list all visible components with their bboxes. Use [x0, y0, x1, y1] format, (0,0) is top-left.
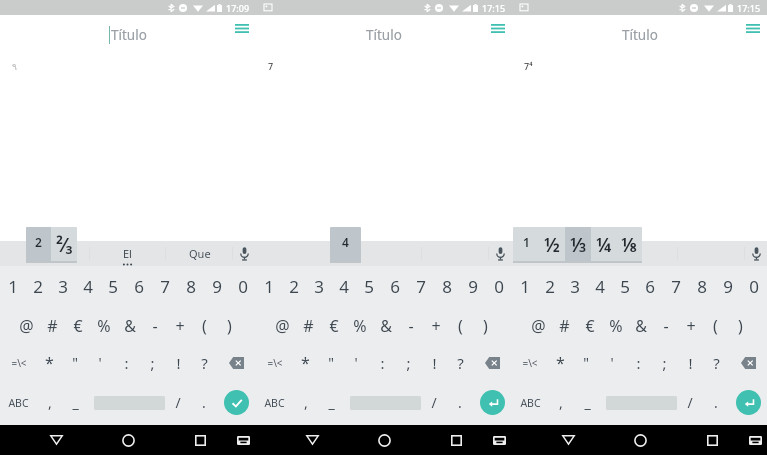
button[interactable]: 7: [152, 266, 178, 307]
button[interactable]: Space: [600, 380, 677, 425]
button[interactable]: ": [318, 345, 343, 380]
button[interactable]: +: [423, 307, 448, 345]
button[interactable]: ABC: [256, 380, 293, 425]
button[interactable]: ;: [139, 345, 165, 380]
button[interactable]: Backspace: [217, 345, 256, 380]
button[interactable]: ABC: [0, 380, 37, 425]
button[interactable]: ": [62, 345, 87, 380]
button[interactable]: /: [421, 380, 447, 425]
button[interactable]: %: [603, 307, 628, 345]
button[interactable]: Space: [344, 380, 421, 425]
button[interactable]: Voice input: [233, 241, 256, 266]
button[interactable]: Voice input: [489, 241, 512, 266]
button[interactable]: €: [65, 307, 91, 345]
button[interactable]: Enter: [729, 380, 767, 425]
button[interactable]: 0: [741, 266, 767, 307]
button[interactable]: Switch keyboard: [740, 425, 767, 455]
button[interactable]: ⅛: [617, 227, 642, 262]
button[interactable]: _: [574, 380, 600, 425]
button[interactable]: Menu: [485, 15, 511, 41]
button[interactable]: Recent apps: [439, 425, 474, 455]
button[interactable]: 5: [612, 266, 637, 307]
button[interactable]: .: [191, 380, 217, 425]
button[interactable]: Recent apps: [183, 425, 218, 455]
button[interactable]: Que: [166, 241, 232, 266]
button[interactable]: Back: [38, 425, 74, 455]
button[interactable]: 9: [204, 266, 230, 307]
button[interactable]: #: [551, 307, 577, 345]
button[interactable]: 8: [689, 266, 715, 307]
button[interactable]: 6: [382, 266, 408, 307]
button[interactable]: 8: [434, 266, 460, 307]
button[interactable]: *: [37, 345, 62, 380]
button[interactable]: El: [90, 241, 165, 266]
button[interactable]: 1: [256, 266, 281, 307]
button[interactable]: Home: [622, 425, 658, 455]
button[interactable]: @: [269, 307, 295, 345]
button[interactable]: -: [142, 307, 167, 345]
button[interactable]: Recent apps: [695, 425, 730, 455]
button[interactable]: 2: [281, 266, 306, 307]
button[interactable]: _: [62, 380, 88, 425]
button[interactable]: [512, 241, 601, 266]
button[interactable]: *: [293, 345, 318, 380]
button[interactable]: =\<: [0, 345, 37, 380]
button[interactable]: 9: [715, 266, 741, 307]
button[interactable]: -: [653, 307, 678, 345]
button[interactable]: [346, 241, 421, 266]
button[interactable]: #: [295, 307, 321, 345]
button[interactable]: 4: [587, 266, 612, 307]
button[interactable]: [256, 241, 345, 266]
button[interactable]: 1: [0, 266, 25, 307]
button[interactable]: 0: [486, 266, 512, 307]
button[interactable]: Voice input: [745, 241, 767, 266]
button[interactable]: €: [321, 307, 347, 345]
button[interactable]: +: [678, 307, 703, 345]
button[interactable]: ,: [548, 380, 574, 425]
button[interactable]: &: [373, 307, 398, 345]
button[interactable]: ;: [395, 345, 421, 380]
button[interactable]: 1: [513, 227, 539, 262]
button[interactable]: :: [113, 345, 139, 380]
button[interactable]: ⅓: [565, 227, 591, 262]
button[interactable]: /: [165, 380, 191, 425]
button[interactable]: 7: [663, 266, 689, 307]
button[interactable]: (: [448, 307, 473, 345]
button[interactable]: =\<: [256, 345, 293, 380]
button[interactable]: Home: [110, 425, 146, 455]
button[interactable]: Space: [88, 380, 165, 425]
button[interactable]: 0: [230, 266, 256, 307]
button[interactable]: &: [628, 307, 653, 345]
button[interactable]: 3: [562, 266, 587, 307]
button[interactable]: Switch keyboard: [228, 425, 258, 455]
button[interactable]: 6: [126, 266, 152, 307]
button[interactable]: 3: [50, 266, 75, 307]
button[interactable]: Enter: [217, 380, 256, 425]
button[interactable]: ,: [293, 380, 318, 425]
button[interactable]: 7: [408, 266, 434, 307]
button[interactable]: ½: [539, 227, 565, 262]
button[interactable]: ABC: [512, 380, 548, 425]
button[interactable]: ): [217, 307, 242, 345]
button[interactable]: =\<: [512, 345, 548, 380]
button[interactable]: 2: [537, 266, 562, 307]
button[interactable]: 9: [460, 266, 486, 307]
button[interactable]: 3: [306, 266, 331, 307]
button[interactable]: ?: [447, 345, 473, 380]
button[interactable]: Enter: [473, 380, 512, 425]
button[interactable]: !: [677, 345, 703, 380]
button[interactable]: Menu: [229, 15, 255, 41]
button[interactable]: ': [599, 345, 625, 380]
button[interactable]: Switch keyboard: [484, 425, 514, 455]
button[interactable]: ': [343, 345, 369, 380]
button[interactable]: #: [39, 307, 65, 345]
button[interactable]: (: [192, 307, 217, 345]
button[interactable]: 1: [512, 266, 537, 307]
button[interactable]: &: [117, 307, 142, 345]
button[interactable]: !: [421, 345, 447, 380]
button[interactable]: :: [625, 345, 651, 380]
button[interactable]: 6: [637, 266, 663, 307]
button[interactable]: ): [728, 307, 753, 345]
button[interactable]: ¼: [591, 227, 617, 262]
